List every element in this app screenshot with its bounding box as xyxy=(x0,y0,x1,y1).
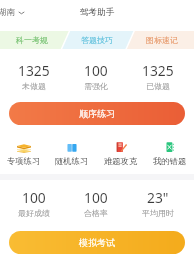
staticText: 合格率 xyxy=(84,208,108,218)
button[interactable]: 顺序练习 xyxy=(9,102,185,125)
button[interactable]: 难题攻克 xyxy=(96,141,145,166)
staticText: 100 xyxy=(84,61,108,80)
staticText: 随机练习 xyxy=(55,156,89,166)
staticText: 科一考规 xyxy=(16,35,48,45)
staticText: 答题技巧 xyxy=(81,35,113,45)
staticText: 驾考助手 xyxy=(0,7,194,18)
button[interactable]: 答题技巧 xyxy=(64,31,129,49)
staticText: 专项练习 xyxy=(7,156,41,166)
button[interactable]: 专项练习 xyxy=(0,141,48,166)
staticText: 1325 xyxy=(142,61,174,80)
button[interactable]: 图标速记 xyxy=(129,31,194,49)
staticText: 平均用时 xyxy=(142,208,174,218)
staticText: 湖南 xyxy=(0,7,15,18)
staticText: 100 xyxy=(84,188,108,207)
staticText: 图标速记 xyxy=(146,35,178,45)
staticText: 已做题 xyxy=(146,81,170,91)
button[interactable]: 1325 xyxy=(127,61,189,91)
staticText: 最好成绩 xyxy=(18,208,50,218)
button[interactable]: 湖南 xyxy=(0,7,25,18)
button[interactable]: 随机练习 xyxy=(48,141,96,166)
button[interactable]: 100 xyxy=(65,61,127,91)
button[interactable]: 科一考规 xyxy=(0,31,64,49)
button[interactable]: 100 xyxy=(65,188,127,218)
staticText: 需强化 xyxy=(84,81,108,91)
staticText: 未做题 xyxy=(22,81,46,91)
button[interactable]: 我的错题 xyxy=(145,141,194,166)
button[interactable]: 100 xyxy=(3,188,65,218)
staticText: 难题攻克 xyxy=(104,156,138,166)
button[interactable]: 23" xyxy=(127,188,189,218)
button[interactable]: 模拟考试 xyxy=(9,231,185,254)
button[interactable]: 1325 xyxy=(3,61,65,91)
staticText: 1325 xyxy=(18,61,50,80)
staticText: 我的错题 xyxy=(153,156,187,166)
staticText: 23" xyxy=(147,188,169,207)
staticText: 顺序练习 xyxy=(79,108,115,119)
staticText: 100 xyxy=(22,188,46,207)
staticText: 模拟考试 xyxy=(79,237,115,248)
